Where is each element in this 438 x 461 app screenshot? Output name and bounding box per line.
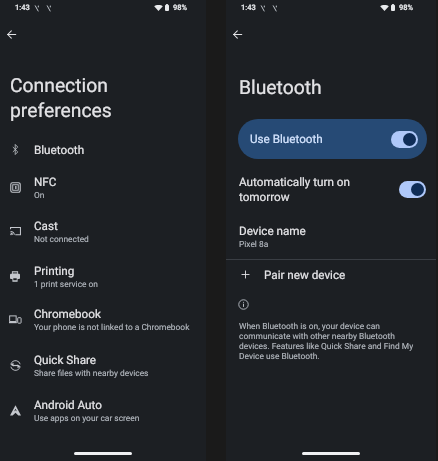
staticText: Automatically turn on tomorrow	[239, 175, 399, 204]
staticText: Quick Share	[34, 353, 97, 367]
staticText: Cast	[34, 219, 58, 233]
button[interactable]: Quick Share	[0, 346, 206, 384]
button[interactable]: Toggle	[391, 131, 418, 148]
staticText: Bluetooth	[34, 143, 85, 157]
staticText: 1:43	[15, 3, 30, 12]
button[interactable]: Android Auto	[0, 391, 206, 429]
staticText: Printing	[34, 264, 75, 278]
button[interactable]: Automatically turn on tomorrow	[226, 170, 436, 208]
staticText: NFC	[34, 175, 57, 189]
button[interactable]: Back	[227, 24, 247, 44]
staticText: Share files with nearby devices	[34, 368, 149, 378]
button[interactable]: NFC	[0, 168, 206, 206]
staticText: Your phone is not linked to a Chromebook	[34, 322, 190, 332]
staticText: Pair new device	[264, 268, 346, 282]
staticText: 98%	[173, 3, 188, 12]
staticText: 98%	[399, 3, 414, 12]
staticText: Chromebook	[34, 307, 101, 321]
button[interactable]: Use Bluetooth	[238, 119, 427, 159]
button[interactable]: Device name	[226, 218, 436, 252]
button[interactable]: Toggle	[399, 181, 426, 198]
staticText: Pixel 8a	[239, 239, 269, 249]
staticText: When Bluetooth is on, your device can co…	[239, 321, 421, 361]
staticText: Device name	[239, 224, 306, 238]
staticText: Use Bluetooth	[250, 132, 323, 146]
staticText: Use apps on your car screen	[34, 413, 140, 423]
staticText: Connection preferences	[10, 74, 112, 121]
staticText: Bluetooth	[239, 76, 322, 99]
staticText: 1 print service on	[34, 279, 98, 289]
staticText: Android Auto	[34, 398, 102, 412]
button[interactable]: Printing	[0, 257, 206, 295]
button[interactable]: Pair new device	[226, 261, 436, 288]
button[interactable]: Cast	[0, 212, 206, 250]
button[interactable]: Chromebook	[0, 300, 206, 338]
staticText: 1:43	[241, 3, 256, 12]
button[interactable]: Back	[1, 24, 21, 44]
staticText: On	[34, 190, 45, 200]
staticText: Not connected	[34, 234, 89, 244]
button[interactable]: Bluetooth	[0, 133, 206, 166]
